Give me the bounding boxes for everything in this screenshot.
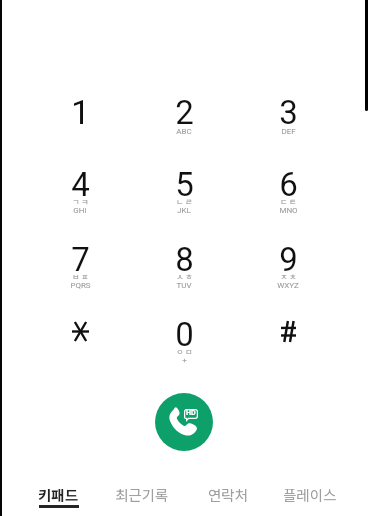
staticText: 4	[71, 165, 90, 204]
button[interactable]: Call	[155, 393, 213, 451]
staticText: 플레이스	[283, 484, 337, 505]
staticText: ABC	[176, 127, 192, 136]
staticText: ㅇ ㅁ	[176, 346, 193, 358]
button[interactable]: 최근기록	[97, 484, 187, 508]
staticText: DEF	[281, 127, 296, 136]
button[interactable]: 6	[236, 154, 340, 229]
staticText: GHI	[73, 206, 87, 215]
staticText: ㄷ ㅌ	[280, 196, 297, 208]
staticText: ㅂ ㅍ	[72, 271, 89, 283]
staticText: 키패드	[38, 484, 79, 505]
staticText: +	[182, 356, 187, 365]
staticText: TUV	[176, 281, 192, 290]
button[interactable]: 3	[236, 79, 340, 154]
staticText: JKL	[177, 206, 191, 215]
button[interactable]: 2	[132, 79, 236, 154]
staticText: 9	[279, 240, 298, 279]
staticText: ㅅ ㅎ	[176, 271, 193, 283]
staticText: 7	[71, 240, 90, 279]
staticText: HD	[186, 408, 196, 416]
staticText: 1	[71, 93, 90, 132]
button[interactable]: 9	[236, 229, 340, 304]
button[interactable]: 7	[28, 229, 132, 304]
button[interactable]: 1	[28, 79, 132, 154]
button[interactable]: 5	[132, 154, 236, 229]
staticText: 8	[175, 240, 194, 279]
staticText: WXYZ	[277, 281, 299, 290]
staticText: 3	[279, 93, 298, 132]
button[interactable]: 연락처	[190, 484, 267, 508]
staticText: 연락처	[208, 484, 249, 505]
button[interactable]: 키패드	[20, 484, 97, 508]
button[interactable]	[28, 304, 132, 379]
staticText: ㄱ ㅋ	[72, 196, 89, 208]
staticText: 최근기록	[115, 484, 169, 505]
staticText: MNO	[279, 206, 298, 215]
staticText: 6	[279, 165, 298, 204]
button[interactable]: 4	[28, 154, 132, 229]
button[interactable]	[236, 304, 340, 379]
button[interactable]: 0	[132, 304, 236, 379]
staticText: ㄴ ㄹ	[176, 196, 193, 208]
button[interactable]: 플레이스	[265, 484, 355, 508]
staticText: 5	[175, 165, 194, 204]
staticText: ㅈ ㅊ	[280, 271, 297, 283]
staticText: 0	[175, 315, 194, 354]
staticText: 2	[175, 93, 194, 132]
button[interactable]: 8	[132, 229, 236, 304]
staticText: PQRS	[70, 281, 91, 290]
